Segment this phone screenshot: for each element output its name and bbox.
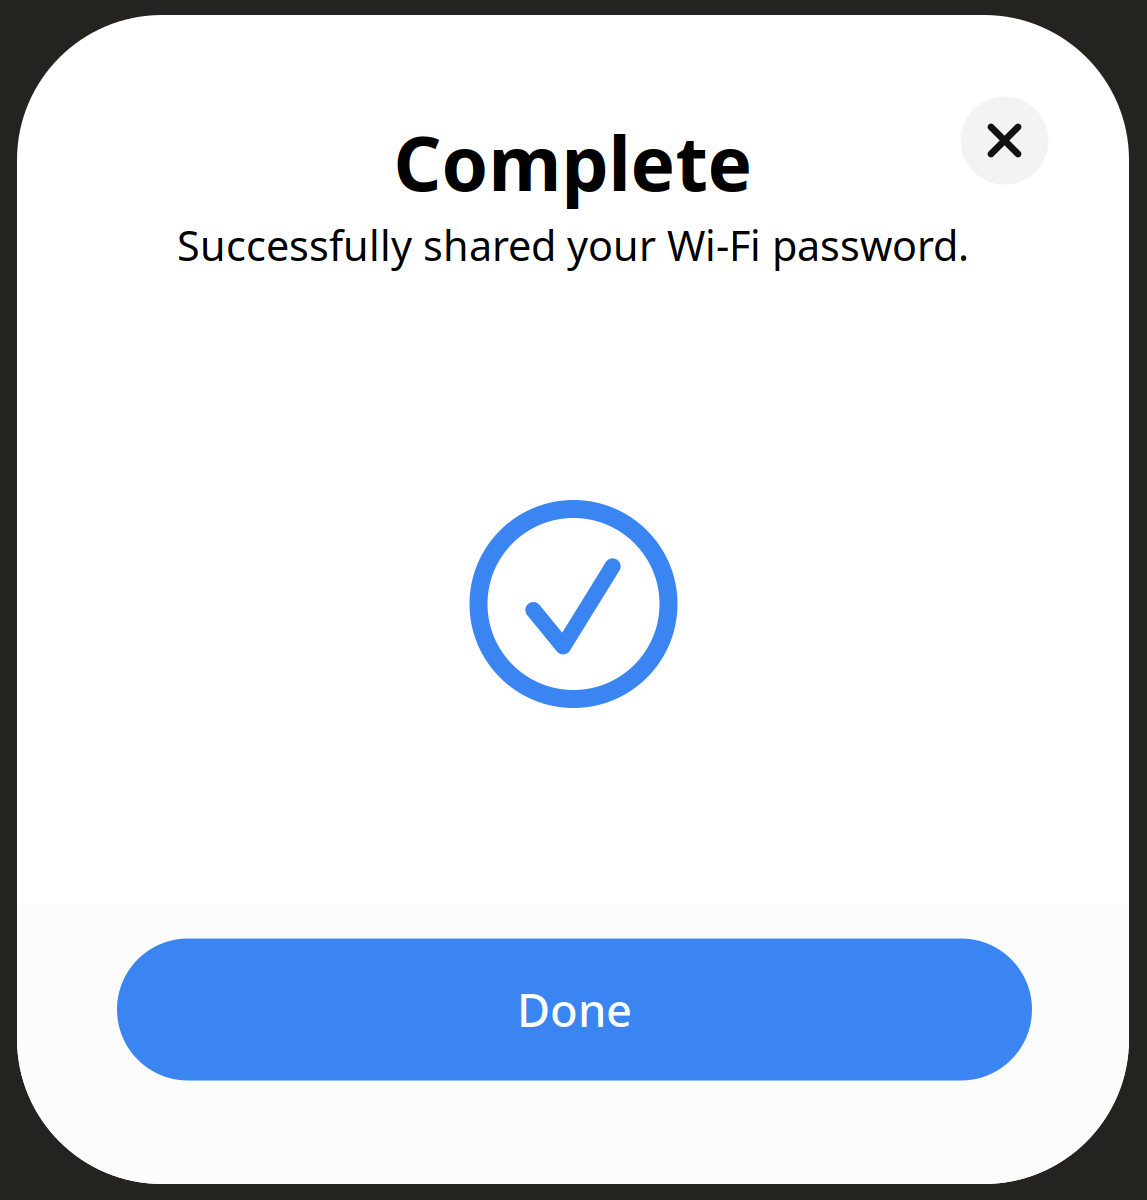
staticText: Successfully shared your Wi-Fi password. [177,218,969,272]
button[interactable]: Done [117,938,1032,1080]
button[interactable]: Close [960,96,1048,184]
staticText: Complete [393,112,752,212]
staticText: Done [517,979,632,1040]
